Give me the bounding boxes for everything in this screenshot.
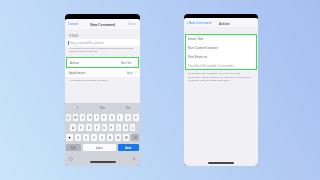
button[interactable]: Emoji keyboard: [69, 157, 73, 161]
staticText: Insert Text: [188, 37, 204, 41]
staticText: Cancel: [68, 22, 78, 26]
button[interactable]: H: [109, 124, 114, 131]
staticText: N: [117, 136, 120, 140]
button[interactable]: Run Custom Gesture: [185, 43, 257, 52]
button[interactable]: C: [91, 134, 97, 141]
staticText: H: [110, 126, 113, 130]
staticText: New Command: [189, 21, 212, 25]
button[interactable]: Backspace: [131, 134, 139, 141]
button[interactable]: Y: [101, 114, 107, 121]
staticText: Run Custom Gesture: [188, 46, 219, 50]
staticText: M: [125, 136, 128, 140]
button[interactable]: New Command: [186, 21, 212, 25]
staticText: E: [82, 116, 84, 120]
staticText: C: [93, 136, 96, 140]
button[interactable]: A: [70, 124, 76, 131]
staticText: Z: [77, 136, 79, 140]
button[interactable]: U: [109, 114, 115, 121]
button[interactable]: W: [73, 114, 78, 121]
button[interactable]: Insert Text: [185, 34, 257, 43]
staticText: P: [135, 116, 137, 120]
staticText: To use Recorded Commands, say "Start rec…: [188, 72, 251, 81]
button[interactable]: J: [116, 124, 121, 131]
staticText: A command must have an action.: [69, 78, 109, 81]
staticText: Q: [67, 116, 70, 120]
button[interactable]: space: [83, 144, 116, 151]
staticText: I: [77, 106, 78, 110]
staticText: Application: [69, 71, 86, 75]
button[interactable]: T: [94, 114, 99, 121]
staticText: 123: [71, 146, 76, 150]
button[interactable]: S: [78, 124, 84, 131]
button[interactable]: X: [83, 134, 89, 141]
button[interactable]: E: [80, 114, 85, 121]
button[interactable]: Play Back Recorded Commands: [185, 61, 257, 70]
staticText: K: [125, 126, 127, 130]
staticText: Say a speakable phrase: [70, 41, 104, 45]
staticText: Not Set: [121, 61, 132, 65]
button[interactable]: Z: [75, 134, 81, 141]
staticText: I'm: [126, 106, 130, 110]
staticText: Any: [127, 71, 133, 75]
staticText: U: [111, 116, 114, 120]
staticText: O: [127, 116, 130, 120]
staticText: V: [101, 136, 103, 140]
button[interactable]: G: [102, 124, 107, 131]
staticText: The: [100, 106, 105, 110]
staticText: Y: [103, 116, 105, 120]
staticText: X: [85, 136, 87, 140]
button[interactable]: P: [133, 114, 139, 121]
button[interactable]: N: [115, 134, 121, 141]
button[interactable]: Shift: [66, 134, 73, 141]
button[interactable]: D: [86, 124, 92, 131]
staticText: Action: [70, 61, 80, 65]
staticText: W: [74, 116, 77, 120]
button[interactable]: Dictation: [132, 157, 136, 161]
staticText: T: [96, 116, 98, 120]
button[interactable]: L: [130, 124, 135, 131]
staticText: L: [132, 126, 134, 130]
button[interactable]: I: [117, 114, 123, 121]
staticText: Action: [219, 21, 230, 25]
button[interactable]: K: [123, 124, 128, 131]
staticText: R: [89, 116, 91, 120]
button[interactable]: 123: [66, 144, 81, 151]
staticText: J: [118, 126, 119, 130]
staticText: Done: [128, 22, 137, 26]
button[interactable]: V: [99, 134, 105, 141]
staticText: Play Back Recorded Commands: [188, 64, 234, 68]
staticText: A command must have a speakable phrase t…: [69, 46, 134, 52]
staticText: I: [119, 116, 121, 120]
button[interactable]: done: [118, 144, 139, 151]
staticText: New Command: [90, 22, 116, 26]
staticText: S: [80, 126, 82, 130]
button[interactable]: M: [123, 134, 129, 141]
staticText: Run Shortcut: [188, 55, 207, 59]
staticText: G: [103, 126, 106, 130]
staticText: A: [72, 126, 75, 130]
button[interactable]: Action: [66, 57, 139, 68]
button[interactable]: F: [94, 124, 100, 131]
staticText: PHRASE: [69, 34, 79, 38]
staticText: F: [96, 126, 98, 130]
button[interactable]: I'm: [115, 103, 140, 112]
button[interactable]: R: [87, 114, 92, 121]
staticText: B: [109, 136, 112, 140]
button[interactable]: Run Shortcut: [185, 52, 257, 61]
button[interactable]: I: [65, 103, 90, 112]
button[interactable]: Say a speakable phrase: [65, 39, 140, 46]
button[interactable]: Cancel: [68, 22, 78, 26]
button[interactable]: O: [125, 114, 131, 121]
staticText: D: [88, 126, 91, 130]
button[interactable]: B: [107, 134, 113, 141]
staticText: space: [96, 146, 104, 150]
button[interactable]: The: [90, 103, 115, 112]
staticText: done: [125, 146, 132, 150]
button[interactable]: Q: [66, 114, 71, 121]
button[interactable]: Application: [65, 68, 140, 77]
button[interactable]: Done: [128, 22, 137, 26]
